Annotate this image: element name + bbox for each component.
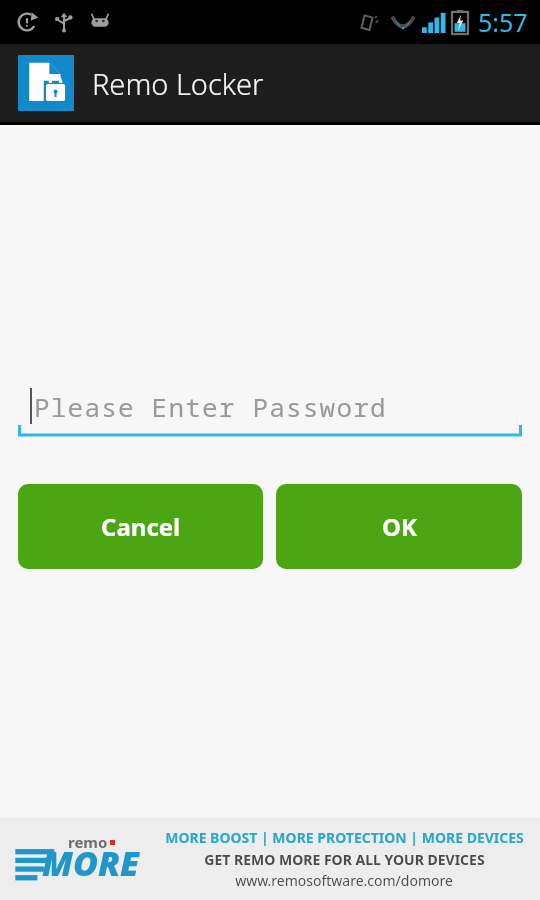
staticText: Please Enter Password <box>34 389 387 424</box>
button[interactable]: Cancel <box>18 484 263 569</box>
staticText: www.remosoftware.com/domore <box>235 871 453 890</box>
button[interactable]: Remo MORE advertisement <box>0 818 540 900</box>
staticText: OK <box>382 510 417 543</box>
staticText: GET REMO MORE FOR ALL YOUR DEVICES <box>204 850 485 869</box>
staticText: Cancel <box>101 510 181 543</box>
button[interactable]: OK <box>276 484 522 569</box>
staticText: remo <box>68 832 108 852</box>
staticText: Remo Locker <box>92 64 264 103</box>
staticText: 5:57 <box>478 5 528 39</box>
button[interactable]: Please Enter Password <box>18 374 522 438</box>
staticText: MORE BOOST | MORE PROTECTION | MORE DEVI… <box>165 828 524 847</box>
staticText: MORE <box>42 840 140 886</box>
